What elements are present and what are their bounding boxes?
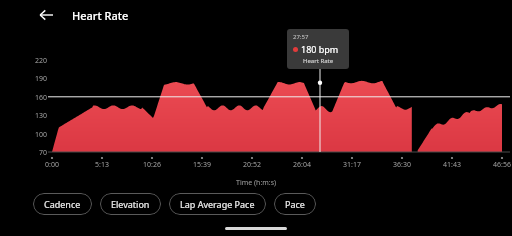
staticText: 70 <box>39 148 48 158</box>
staticText: 180 bpm <box>301 43 339 55</box>
staticText: 31:17 <box>343 160 361 170</box>
button[interactable]: Lap Average Pace <box>169 193 266 215</box>
staticText: Heart Rate <box>303 57 334 65</box>
staticText: Cadence <box>44 198 81 210</box>
button[interactable]: Back <box>34 3 58 27</box>
staticText: 0:00 <box>45 160 59 170</box>
staticText: 5:13 <box>95 160 109 170</box>
staticText: 100 <box>35 130 48 140</box>
button[interactable]: Pace <box>274 193 316 215</box>
button[interactable]: Cadence <box>33 193 92 215</box>
staticText: 46:56 <box>493 160 511 170</box>
staticText: 26:04 <box>293 160 311 170</box>
button[interactable]: Elevation <box>100 193 161 215</box>
staticText: Lap Average Pace <box>180 198 255 210</box>
staticText: Pace <box>285 198 305 210</box>
staticText: Elevation <box>111 198 150 210</box>
staticText: 27:57 <box>293 33 309 41</box>
staticText: 20:52 <box>243 160 261 170</box>
staticText: 15:39 <box>193 160 211 170</box>
staticText: 130 <box>35 111 48 121</box>
staticText: Heart Rate <box>72 8 129 23</box>
staticText: 10:26 <box>143 160 161 170</box>
staticText: 220 <box>35 56 48 66</box>
staticText: 160 <box>35 93 48 103</box>
staticText: Time (h:m:s) <box>236 178 277 188</box>
staticText: 41:43 <box>443 160 461 170</box>
staticText: 36:30 <box>393 160 411 170</box>
staticText: 190 <box>35 74 48 84</box>
